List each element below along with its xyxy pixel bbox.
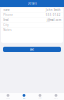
button[interactable]: Phone	[1, 13, 63, 18]
button[interactable]: Name	[1, 8, 63, 13]
staticText: More	[54, 97, 58, 99]
staticText: Home	[6, 97, 10, 99]
button[interactable]: City	[1, 23, 63, 28]
staticText: Name	[3, 8, 10, 12]
button[interactable]: More	[48, 94, 64, 99]
button[interactable]: Home	[0, 94, 16, 99]
staticText: j@mail.com	[47, 18, 61, 22]
button[interactable]: Add	[32, 94, 48, 99]
staticText: Phone	[3, 13, 13, 17]
staticText: Save	[29, 48, 34, 51]
button[interactable]: Email	[1, 18, 63, 23]
staticText: Details	[27, 2, 36, 5]
staticText: Email	[3, 18, 9, 22]
staticText: Items	[22, 97, 25, 99]
staticText: City	[3, 23, 8, 27]
button[interactable]: Items	[16, 94, 32, 99]
staticText: John Smith	[46, 8, 61, 12]
staticText: 555 0142	[46, 13, 61, 17]
staticText: Notes	[3, 28, 11, 32]
staticText: Add	[38, 97, 41, 99]
button[interactable]: Notes	[1, 28, 63, 32]
button[interactable]: Save	[3, 47, 61, 52]
